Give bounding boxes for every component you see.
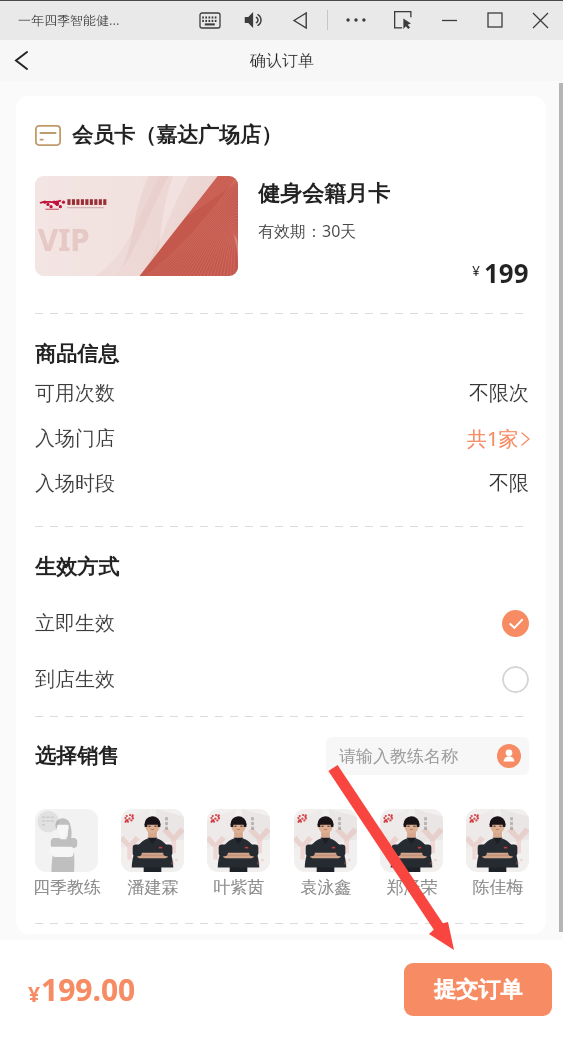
button[interactable]: More bbox=[333, 0, 379, 40]
staticText: 叶紫茵 bbox=[193, 877, 285, 898]
button[interactable]: 袁泳鑫 bbox=[294, 809, 357, 872]
staticText: 可用次数 bbox=[35, 381, 115, 406]
staticText: 一年四季智能健... bbox=[18, 11, 120, 29]
button[interactable]: Back bbox=[0, 40, 42, 81]
staticText: 健身会籍月卡 bbox=[258, 180, 390, 208]
staticText: 共1家 bbox=[467, 425, 519, 452]
button[interactable]: Close bbox=[517, 0, 563, 40]
staticText: 提交订单 bbox=[434, 976, 522, 1004]
button[interactable]: Keyboard bbox=[187, 0, 233, 40]
button[interactable]: Volume bbox=[231, 0, 277, 40]
button[interactable]: 潘建霖 bbox=[121, 809, 184, 872]
staticText: 199.00 bbox=[41, 969, 136, 1010]
button[interactable]: Minimize bbox=[426, 0, 472, 40]
button[interactable]: 提交订单 bbox=[404, 963, 552, 1016]
staticText: 郑泽荣 bbox=[366, 877, 458, 898]
staticText: 到店生效 bbox=[35, 667, 115, 692]
staticText: 请输入教练名称 bbox=[339, 746, 458, 767]
button[interactable]: 入场时段 bbox=[35, 461, 529, 506]
button[interactable]: 四季教练 bbox=[35, 809, 98, 872]
staticText: 不限 bbox=[489, 471, 529, 496]
staticText: 选择销售 bbox=[35, 743, 119, 769]
staticText: 袁泳鑫 bbox=[280, 877, 372, 898]
staticText: ¥ bbox=[28, 980, 41, 1009]
staticText: 不限次 bbox=[469, 381, 529, 406]
staticText: ¥ bbox=[472, 261, 481, 280]
button[interactable]: Maximize bbox=[472, 0, 518, 40]
button[interactable]: 入场门店 bbox=[35, 416, 529, 461]
staticText: 确认订单 bbox=[250, 51, 314, 71]
staticText: VIP bbox=[38, 218, 90, 260]
button[interactable]: 到店生效 bbox=[35, 651, 529, 707]
button[interactable]: 可用次数 bbox=[35, 371, 529, 416]
button[interactable]: 陈佳梅 bbox=[466, 809, 529, 872]
button[interactable]: 请输入教练名称 bbox=[326, 737, 529, 775]
staticText: 商品信息 bbox=[35, 341, 119, 367]
staticText: 有效期：30天 bbox=[258, 220, 357, 242]
button[interactable]: 郑泽荣 bbox=[380, 809, 443, 872]
staticText: 生效方式 bbox=[35, 554, 119, 580]
staticText: 陈佳梅 bbox=[452, 877, 544, 898]
staticText: 潘建霖 bbox=[107, 877, 199, 898]
staticText: 会员卡（嘉达广场店） bbox=[72, 122, 282, 148]
button[interactable]: Back bbox=[277, 0, 323, 40]
staticText: 立即生效 bbox=[35, 611, 115, 636]
staticText: 入场门店 bbox=[35, 426, 115, 451]
button[interactable]: 立即生效 bbox=[35, 595, 529, 651]
staticText: 四季教练 bbox=[21, 877, 113, 898]
button[interactable]: 叶紫茵 bbox=[207, 809, 270, 872]
button[interactable]: Screenshot bbox=[380, 0, 426, 40]
staticText: 入场时段 bbox=[35, 471, 115, 496]
staticText: 199 bbox=[484, 255, 529, 283]
